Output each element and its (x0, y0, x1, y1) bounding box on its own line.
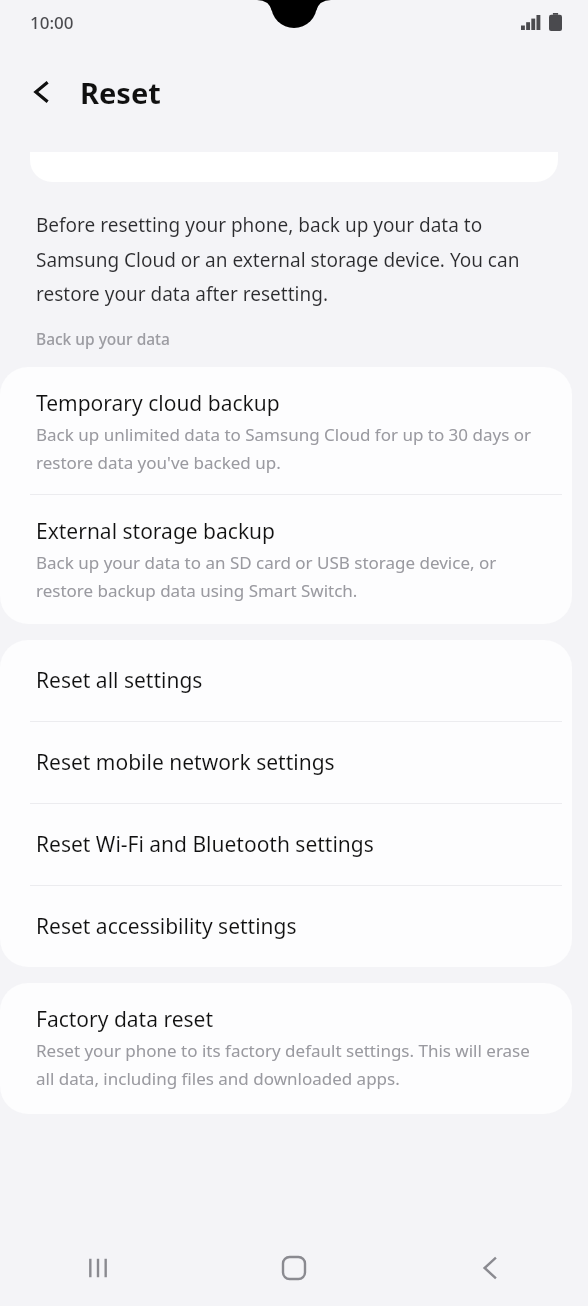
button[interactable]: Recent apps (0, 1230, 196, 1306)
staticText: Back up your data (36, 328, 170, 349)
staticText: Reset your phone to its factory default … (36, 1039, 544, 1090)
staticText: Reset mobile network settings (36, 748, 335, 777)
button[interactable]: Reset all settings (0, 640, 572, 721)
button[interactable]: Home (196, 1230, 392, 1306)
staticText: 10:00 (30, 11, 74, 34)
staticText: Reset all settings (36, 666, 203, 695)
button[interactable]: Temporary cloud backup (0, 367, 572, 494)
button[interactable]: Reset accessibility settings (0, 886, 572, 967)
button[interactable]: Reset mobile network settings (0, 722, 572, 803)
button[interactable]: Back (392, 1230, 588, 1306)
staticText: Back up unlimited data to Samsung Cloud … (36, 423, 544, 474)
staticText: Reset accessibility settings (36, 912, 297, 941)
button[interactable]: Reset Wi-Fi and Bluetooth settings (0, 804, 572, 885)
button[interactable]: External storage backup (0, 495, 572, 624)
staticText: Reset Wi-Fi and Bluetooth settings (36, 830, 374, 859)
staticText: External storage backup (36, 517, 275, 546)
staticText: Reset (80, 73, 161, 112)
staticText: Back up your data to an SD card or USB s… (36, 551, 544, 602)
staticText: Factory data reset (36, 1005, 213, 1034)
button[interactable]: Back (18, 68, 66, 116)
button[interactable]: Factory data reset (0, 983, 572, 1114)
staticText: Temporary cloud backup (36, 389, 280, 418)
staticText: Before resetting your phone, back up you… (36, 212, 544, 306)
